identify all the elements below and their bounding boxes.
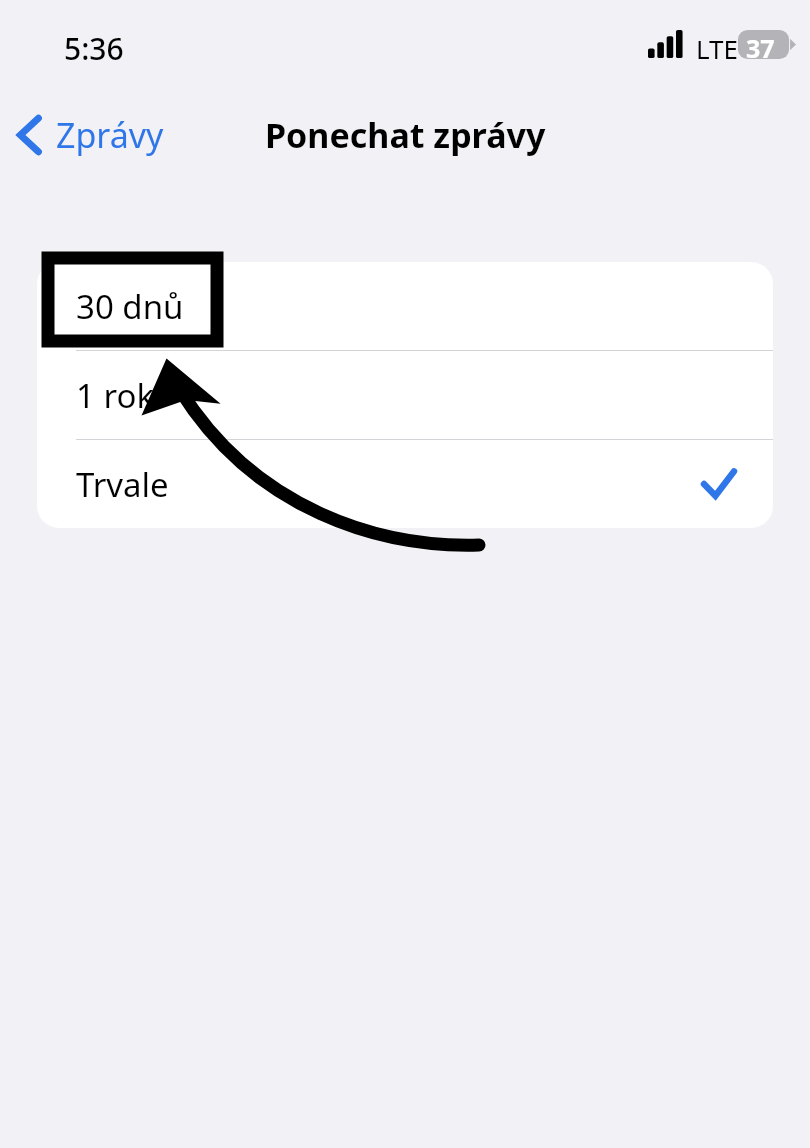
button[interactable]: 30 dnů — [37, 262, 773, 350]
staticText: 30 dnů — [76, 284, 184, 329]
staticText: Trvale — [76, 462, 169, 507]
button[interactable]: Zprávy — [0, 104, 182, 166]
staticText: 5:36 — [64, 28, 124, 69]
staticText: Ponechat zprávy — [265, 112, 546, 158]
staticText: 37 — [746, 31, 775, 65]
button[interactable]: Trvale — [37, 440, 773, 528]
staticText: 1 rok — [76, 373, 155, 418]
staticText: Zprávy — [56, 112, 164, 158]
staticText: LTE — [696, 31, 739, 66]
button[interactable]: 1 rok — [37, 351, 773, 439]
